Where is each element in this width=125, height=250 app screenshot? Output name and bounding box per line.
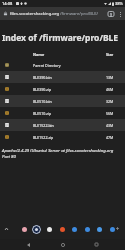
button[interactable]: Recent apps xyxy=(91,239,102,250)
button[interactable]: App shortcut xyxy=(30,223,42,235)
staticText: 14:08 xyxy=(2,1,13,6)
staticText: BLE510.bin xyxy=(33,99,52,104)
staticText: Apache/2.4.29 (Ubuntu) Server at files.s… xyxy=(2,147,114,160)
button[interactable]: Expand dock xyxy=(3,225,10,232)
button[interactable]: Parent Directory xyxy=(0,59,125,71)
button[interactable]: BLE510.bin xyxy=(0,95,125,107)
button[interactable]: App shortcut xyxy=(56,223,68,235)
button[interactable]: Back xyxy=(23,239,34,250)
staticText: 32M xyxy=(106,99,114,104)
button[interactable]: App shortcut xyxy=(81,223,93,235)
button[interactable]: BLE390.bin xyxy=(0,71,125,83)
staticText: Parent Directory xyxy=(33,63,61,68)
button[interactable]: App shortcut xyxy=(18,223,30,235)
staticText: 13M xyxy=(106,75,114,80)
staticText: BLE1522.zip xyxy=(33,135,54,140)
button[interactable]: BLE1522.zip xyxy=(0,131,125,143)
button[interactable]: BLE1522.bin xyxy=(0,119,125,131)
staticText: 56M xyxy=(106,111,114,116)
button[interactable]: BLE390.zip xyxy=(0,83,125,95)
button[interactable]: App shortcut xyxy=(106,223,118,235)
staticText: 38% xyxy=(115,1,123,6)
staticText: 46M xyxy=(106,87,114,92)
button[interactable]: App shortcut xyxy=(93,223,105,235)
staticText: BLE1522.bin xyxy=(33,123,54,128)
staticText: BLE510.zip xyxy=(33,111,52,116)
button[interactable]: Add shortcut xyxy=(114,225,121,232)
button[interactable]: BLE510.zip xyxy=(0,107,125,119)
staticText: /firmware/pro/BLE/ xyxy=(60,11,99,17)
staticText: Index of /firmware/pro/BLE xyxy=(2,32,119,44)
button[interactable]: App shortcut xyxy=(43,223,55,235)
staticText: 47M xyxy=(106,135,114,140)
staticText: Size xyxy=(106,52,114,57)
staticText: BLE390.bin xyxy=(33,75,52,80)
button[interactable]: App shortcut xyxy=(68,223,80,235)
button[interactable]: Home xyxy=(57,239,68,250)
button[interactable]: Switch tabs xyxy=(107,10,115,18)
staticText: files.scootershacking.org xyxy=(10,11,60,17)
button[interactable]: More options xyxy=(117,9,123,19)
staticText: 9 xyxy=(110,12,112,17)
staticText: Name xyxy=(33,52,45,57)
staticText: 43M xyxy=(106,123,114,128)
staticText: BLE390.zip xyxy=(33,87,52,92)
